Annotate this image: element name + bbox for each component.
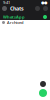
staticText: WhatsApp <box>3 14 25 20</box>
button[interactable]: New chat <box>39 89 47 97</box>
staticText: Archived <box>7 20 23 25</box>
button[interactable]: AI assistant <box>40 81 46 87</box>
button[interactable]: Compose <box>43 6 48 11</box>
staticText: 9:41 <box>3 0 10 5</box>
staticText: ●● <box>41 0 47 5</box>
button[interactable]: Profile <box>2 6 7 11</box>
staticText: Chats <box>10 5 24 12</box>
button[interactable]: Camera <box>35 6 40 11</box>
